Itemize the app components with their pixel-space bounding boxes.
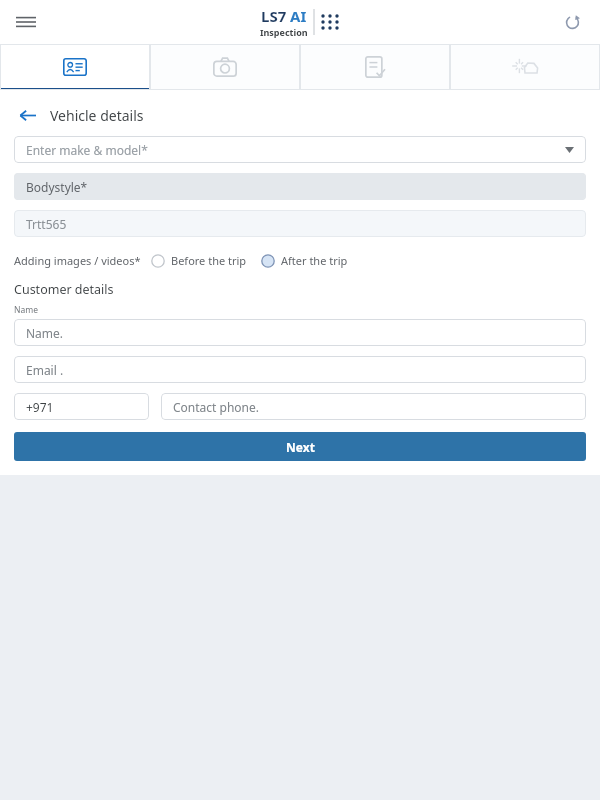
staticText: Email . [26, 362, 64, 378]
staticText: Enter make & model* [26, 142, 148, 158]
staticText: Vehicle details [50, 106, 144, 125]
button[interactable]: Checklist [300, 44, 450, 90]
button[interactable]: Trtt565 [14, 210, 586, 237]
staticText: Next [286, 439, 315, 455]
staticText: Customer details [14, 281, 114, 298]
button[interactable]: Back [14, 102, 40, 128]
button[interactable]: Menu [8, 4, 44, 40]
button[interactable]: Next [14, 432, 586, 461]
button[interactable]: Before the trip [151, 253, 247, 268]
staticText: Name. [26, 325, 64, 341]
button[interactable]: Enter make & model* [14, 136, 586, 163]
button[interactable]: Email . [14, 356, 586, 383]
button[interactable]: Name. [14, 319, 586, 346]
staticText: AI [290, 6, 307, 26]
staticText: Before the trip [171, 253, 247, 268]
button[interactable]: +971 [14, 393, 149, 420]
button[interactable]: After the trip [261, 253, 348, 268]
button[interactable]: Refresh [556, 6, 588, 38]
staticText: Adding images / videos* [14, 253, 141, 268]
staticText: Inspection [260, 26, 308, 38]
button[interactable]: Photos [150, 44, 300, 90]
staticText: Contact phone. [173, 399, 259, 415]
staticText: LS7 [261, 6, 287, 26]
button[interactable]: Bodystyle* [14, 173, 586, 200]
staticText: Trtt565 [26, 216, 67, 232]
button[interactable]: Contact phone. [161, 393, 586, 420]
staticText: Bodystyle* [26, 179, 88, 195]
button[interactable]: Damage [450, 44, 600, 90]
staticText: +971 [26, 399, 54, 415]
staticText: Name [14, 304, 38, 316]
button[interactable]: Vehicle details [0, 44, 150, 90]
staticText: After the trip [281, 253, 348, 268]
